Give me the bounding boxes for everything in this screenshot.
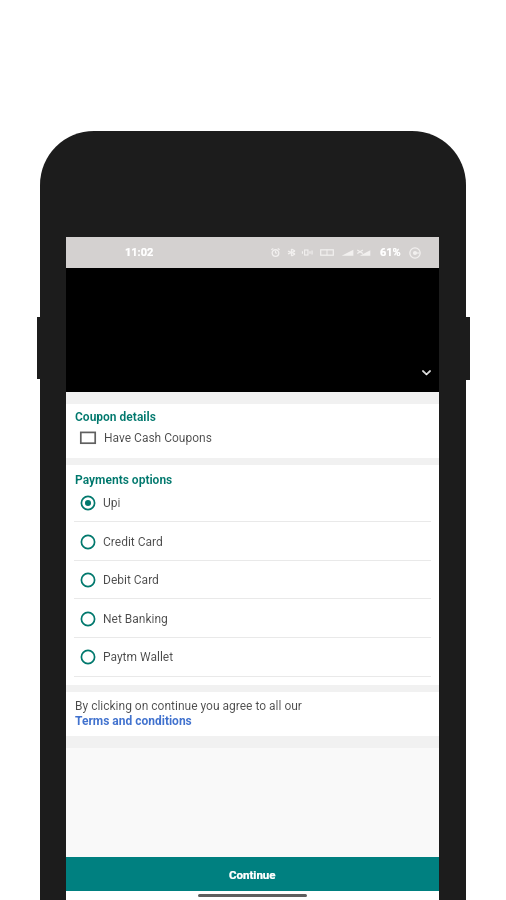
button[interactable]: Have Cash Coupons (66, 427, 439, 449)
staticText: Debit Card (103, 573, 159, 587)
button[interactable]: Expand details (419, 365, 434, 380)
button[interactable]: Upi (66, 483, 439, 522)
button[interactable]: Net Banking (66, 599, 439, 638)
button[interactable]: Continue (66, 857, 439, 891)
staticText: Coupon details (75, 410, 156, 424)
staticText: Credit Card (103, 535, 163, 549)
staticText: Have Cash Coupons (104, 431, 212, 445)
staticText: Net Banking (103, 612, 168, 626)
staticText: By clicking on continue you agree to all… (75, 699, 302, 713)
button[interactable]: Terms and conditions (75, 714, 192, 728)
staticText: Paytm Wallet (103, 650, 174, 664)
button[interactable]: Paytm Wallet (66, 637, 439, 676)
staticText: 11:02 (125, 246, 154, 259)
staticText: Upi (103, 496, 121, 510)
staticText: 61% (380, 246, 401, 259)
button[interactable]: Credit Card (66, 522, 439, 561)
button[interactable]: Debit Card (66, 560, 439, 599)
staticText: Continue (229, 868, 276, 881)
staticText: Payments options (75, 473, 173, 487)
